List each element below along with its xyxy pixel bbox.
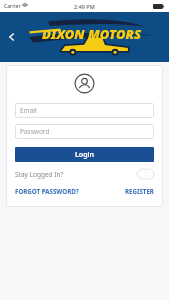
- button[interactable]: Back: [0, 25, 24, 49]
- button[interactable]: Stay Logged In?: [15, 169, 154, 179]
- staticText: Stay Logged In?: [15, 170, 64, 179]
- button[interactable]: Login: [15, 147, 154, 162]
- staticText: Password: [20, 127, 50, 136]
- staticText: FORGOT PASSWORD?: [15, 187, 79, 195]
- button[interactable]: REGISTER: [125, 187, 154, 195]
- staticText: Login: [75, 150, 94, 160]
- button[interactable]: Email: [15, 103, 154, 118]
- staticText: 2:49 PM: [74, 3, 95, 10]
- staticText: Carrier: [4, 3, 21, 10]
- staticText: Email: [20, 106, 37, 115]
- button[interactable]: Password: [15, 124, 154, 139]
- staticText: REGISTER: [125, 187, 154, 195]
- staticText: DIXON MOTORS: [42, 25, 142, 43]
- button[interactable]: FORGOT PASSWORD?: [15, 187, 79, 195]
